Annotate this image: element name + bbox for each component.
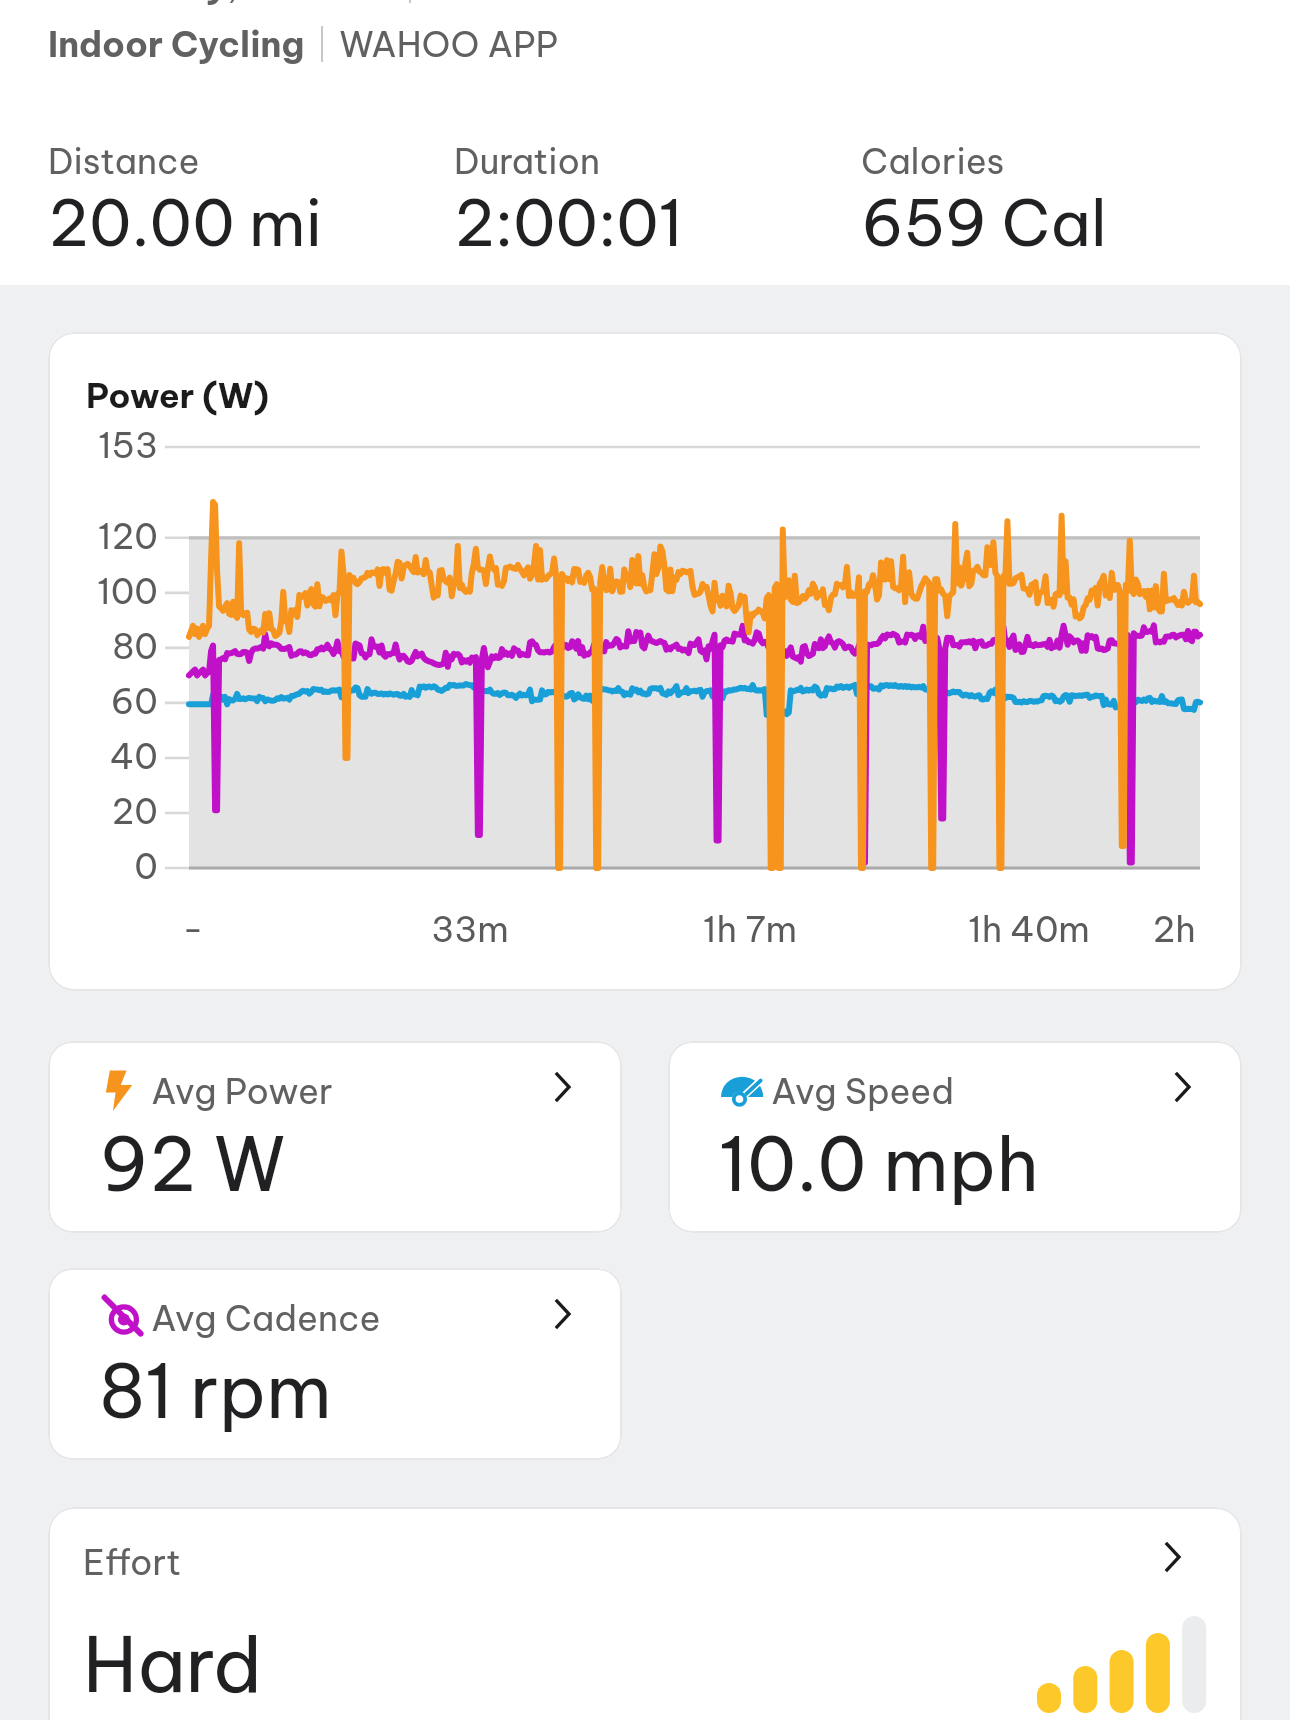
staticText: 1h 7m <box>640 907 860 951</box>
button[interactable]: Avg Cadence <box>48 1268 622 1460</box>
staticText: 0 <box>48 844 158 888</box>
staticText: Yesterday, 5:22 PM <box>48 0 393 7</box>
other: Effort <box>1150 1535 1194 1579</box>
button[interactable]: Avg Power <box>48 1041 622 1233</box>
staticText: Avg Power <box>151 1069 333 1113</box>
staticText: 33m <box>360 907 580 951</box>
staticText: 153 <box>48 423 158 467</box>
staticText: 80 <box>48 624 158 668</box>
button[interactable]: Effort <box>48 1507 1242 1720</box>
staticText: 1h 40m <box>919 907 1139 951</box>
staticText: Power (W) <box>86 374 270 417</box>
staticText: 40 <box>48 734 158 778</box>
staticText: 10.0 mph <box>719 1118 1039 1210</box>
staticText: Hard <box>83 1616 262 1712</box>
other: Avg Power <box>540 1065 584 1109</box>
staticText: - <box>83 907 303 951</box>
staticText: Duration <box>454 139 601 183</box>
other: Avg Speed <box>1160 1065 1204 1109</box>
staticText: Calories <box>861 139 1005 183</box>
button[interactable]: Avg Speed <box>668 1041 1242 1233</box>
staticText: Avg Cadence <box>151 1296 381 1340</box>
staticText: 2:00:01 <box>454 183 684 263</box>
staticText: 659 Cal <box>861 183 1107 263</box>
staticText: 120 <box>48 514 158 558</box>
staticText: 20 <box>48 789 158 833</box>
other: Avg Cadence <box>540 1292 584 1336</box>
staticText: 92 W <box>99 1118 287 1210</box>
staticText: Indoor Cycling <box>48 22 305 66</box>
staticText: 20.00 mi <box>48 183 323 263</box>
staticText: Effort <box>83 1540 182 1584</box>
staticText: 100 <box>48 569 158 613</box>
staticText: WAHOO APP <box>339 22 559 66</box>
button[interactable]: Power (W) <box>48 332 1242 991</box>
staticText: 81 rpm <box>99 1345 332 1437</box>
staticText: Avg Speed <box>771 1069 954 1113</box>
staticText: 60 <box>48 679 158 723</box>
staticText: 2h <box>1064 907 1242 951</box>
staticText: Distance <box>48 139 200 183</box>
